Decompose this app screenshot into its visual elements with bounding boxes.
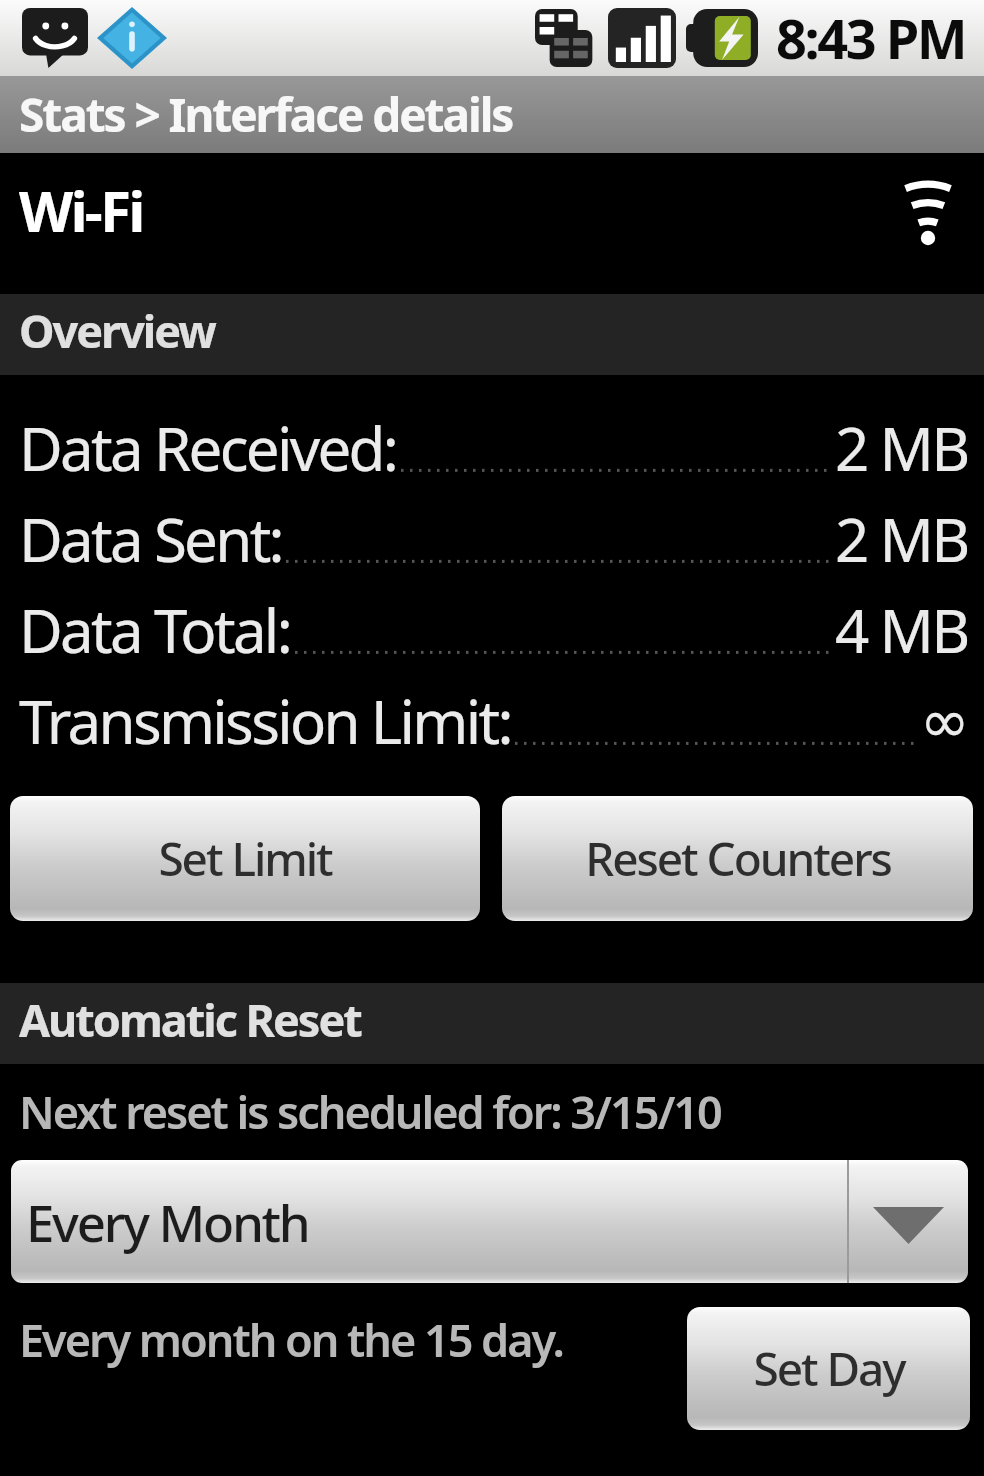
button[interactable]: Every Month xyxy=(11,1160,968,1283)
staticText: Data Sent: xyxy=(19,498,282,580)
button[interactable]: Data Total: xyxy=(0,584,984,675)
staticText: Data Total: xyxy=(19,589,291,671)
button[interactable]: Set Day xyxy=(687,1307,970,1430)
button[interactable]: Data Sent: xyxy=(0,493,984,584)
staticText: Transmission Limit: xyxy=(19,680,511,762)
staticText: ∞ xyxy=(920,686,968,756)
staticText: Automatic Reset xyxy=(19,989,361,1050)
button[interactable]: Reset Counters xyxy=(502,796,973,921)
button[interactable]: Data Received: xyxy=(0,402,984,493)
other: Open dropdown xyxy=(849,1160,968,1283)
staticText: 8:43 PM xyxy=(776,1,966,75)
staticText: Overview xyxy=(19,300,215,361)
button[interactable]: Set Limit xyxy=(10,796,480,921)
button[interactable]: Wi-Fi signal xyxy=(900,175,956,247)
staticText: Every Month xyxy=(26,1187,847,1256)
staticText: Stats > Interface details xyxy=(19,83,513,146)
staticText: Wi-Fi xyxy=(19,172,143,248)
staticText: Next reset is scheduled for: 3/15/10 xyxy=(19,1081,721,1142)
staticText: 2 MB xyxy=(835,407,968,489)
staticText: Set Day xyxy=(753,1337,905,1400)
button[interactable]: Transmission Limit: xyxy=(0,675,984,766)
staticText: 2 MB xyxy=(835,498,968,580)
staticText: Every month on the 15 day. xyxy=(19,1309,563,1370)
staticText: Data Received: xyxy=(19,407,397,489)
staticText: Set Limit xyxy=(158,827,332,890)
staticText: 4 MB xyxy=(835,589,968,671)
staticText: Reset Counters xyxy=(585,827,891,890)
